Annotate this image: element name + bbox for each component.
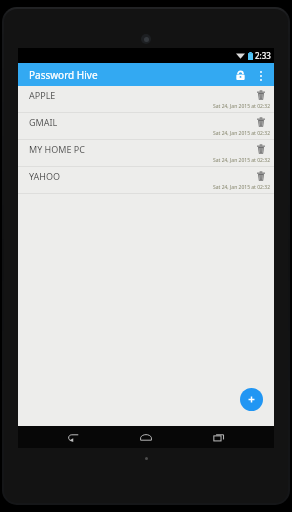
button[interactable]: Delete MY HOME PC bbox=[253, 141, 268, 156]
button[interactable]: MY HOME PC bbox=[18, 140, 274, 167]
button[interactable]: YAHOO bbox=[18, 167, 274, 194]
staticText: Sat 24, Jan 2015 at 02:32 bbox=[212, 184, 270, 191]
button[interactable]: Delete APPLE bbox=[253, 87, 268, 102]
button[interactable]: Add password bbox=[240, 388, 263, 411]
staticText: Sat 24, Jan 2015 at 02:32 bbox=[212, 157, 270, 164]
button[interactable]: Delete GMAIL bbox=[253, 114, 268, 129]
button[interactable]: APPLE bbox=[18, 86, 274, 113]
staticText: MY HOME PC bbox=[29, 143, 85, 155]
staticText: 2:33 bbox=[255, 50, 271, 61]
staticText: Sat 24, Jan 2015 at 02:32 bbox=[212, 103, 270, 110]
button[interactable]: Home bbox=[128, 426, 164, 448]
button[interactable]: GMAIL bbox=[18, 113, 274, 140]
button[interactable]: Lock bbox=[229, 64, 251, 86]
staticText: Password Hive bbox=[29, 68, 98, 82]
staticText: YAHOO bbox=[29, 170, 61, 182]
button[interactable]: Back bbox=[55, 426, 91, 448]
button[interactable]: Delete YAHOO bbox=[253, 168, 268, 183]
staticText: GMAIL bbox=[29, 116, 58, 128]
button[interactable]: More options bbox=[251, 66, 270, 85]
staticText: APPLE bbox=[29, 89, 56, 101]
staticText: Sat 24, Jan 2015 at 02:32 bbox=[212, 130, 270, 137]
button[interactable]: Recents bbox=[201, 426, 237, 448]
